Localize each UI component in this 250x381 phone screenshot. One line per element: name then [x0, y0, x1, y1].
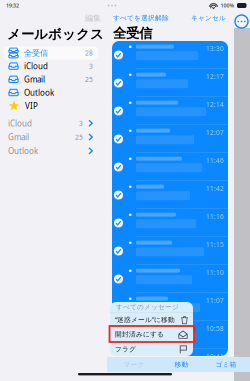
button[interactable]: フラグ	[110, 342, 193, 356]
staticText: 25	[85, 75, 93, 84]
button[interactable]: 移動	[161, 360, 201, 369]
staticText: 12:07	[206, 128, 224, 137]
staticText: 移動	[174, 360, 188, 369]
staticText: Gmail	[8, 132, 29, 142]
staticText: マーク	[123, 360, 144, 369]
staticText: すべてを選択解除	[113, 14, 169, 22]
button[interactable]: 11:15	[112, 237, 228, 265]
button[interactable]: Outlook	[3, 144, 98, 158]
button[interactable]: 12:07	[112, 125, 228, 153]
staticText: すべてのメッセージ	[116, 303, 179, 311]
button[interactable]: 13:30	[112, 41, 228, 69]
button[interactable]: 10:58	[112, 321, 228, 349]
staticText: 3	[89, 62, 93, 71]
button[interactable]: 11:07	[112, 293, 228, 321]
button[interactable]: 11:46	[112, 153, 228, 181]
button[interactable]: 11:42	[112, 181, 228, 209]
button[interactable]: Outlook	[3, 86, 98, 99]
button[interactable]: iCloud	[3, 60, 98, 73]
staticText: ゴミ箱	[215, 360, 236, 369]
staticText: 全受信	[113, 25, 152, 41]
button[interactable]: キャンセル	[191, 14, 226, 22]
staticText: 全受信	[24, 48, 48, 58]
button[interactable]: マーク	[111, 360, 157, 369]
staticText: 編集	[85, 13, 101, 23]
button[interactable]: 全受信	[3, 46, 98, 60]
staticText: Gmail	[24, 74, 45, 85]
staticText: 100%	[220, 2, 234, 9]
staticText: 11:16	[206, 212, 224, 221]
staticText: “迷惑メール”に移動	[115, 315, 175, 324]
staticText: 28	[85, 49, 93, 57]
button[interactable]: “迷惑メール”に移動	[110, 312, 193, 327]
button[interactable]: 編集	[85, 13, 101, 23]
button[interactable]: Gmail	[3, 130, 98, 144]
button[interactable]: iCloud	[3, 116, 98, 130]
button[interactable]: 開封済みにする	[110, 327, 193, 342]
staticText: VIP	[25, 100, 38, 111]
staticText: 10:41	[206, 352, 224, 361]
staticText: Outlook	[8, 146, 38, 156]
staticText: 11:46	[206, 156, 224, 165]
staticText: メールボックス	[7, 26, 104, 42]
staticText: iCloud	[8, 118, 32, 129]
staticText: 10:58	[206, 324, 224, 333]
button[interactable]: Gmail	[3, 73, 98, 86]
staticText: Outlook	[24, 87, 54, 98]
staticText: 11:10	[206, 268, 224, 277]
staticText: 11:15	[206, 240, 224, 249]
button[interactable]: 12:17	[112, 69, 228, 97]
staticText: 12:14	[206, 100, 224, 109]
staticText: 11:07	[206, 296, 224, 305]
staticText: 開封済みにする	[115, 330, 164, 338]
staticText: iCloud	[24, 61, 48, 71]
button[interactable]: 11:10	[112, 265, 228, 293]
button[interactable]: ゴミ箱	[206, 360, 246, 369]
button[interactable]: その他	[235, 15, 248, 28]
staticText: キャンセル	[191, 14, 226, 22]
button[interactable]: すべてを選択解除	[113, 14, 169, 22]
button[interactable]: 11:16	[112, 209, 228, 237]
staticText: 3	[79, 119, 83, 128]
staticText: 12:17	[206, 72, 224, 81]
staticText: 25	[75, 133, 83, 142]
staticText: 13:30	[206, 44, 224, 53]
button[interactable]: VIP	[3, 99, 98, 112]
staticText: 11:42	[206, 184, 224, 193]
button[interactable]: 10:41	[112, 349, 228, 377]
staticText: 19:32	[6, 2, 19, 9]
button[interactable]: 12:14	[112, 97, 228, 125]
staticText: フラグ	[115, 345, 136, 353]
